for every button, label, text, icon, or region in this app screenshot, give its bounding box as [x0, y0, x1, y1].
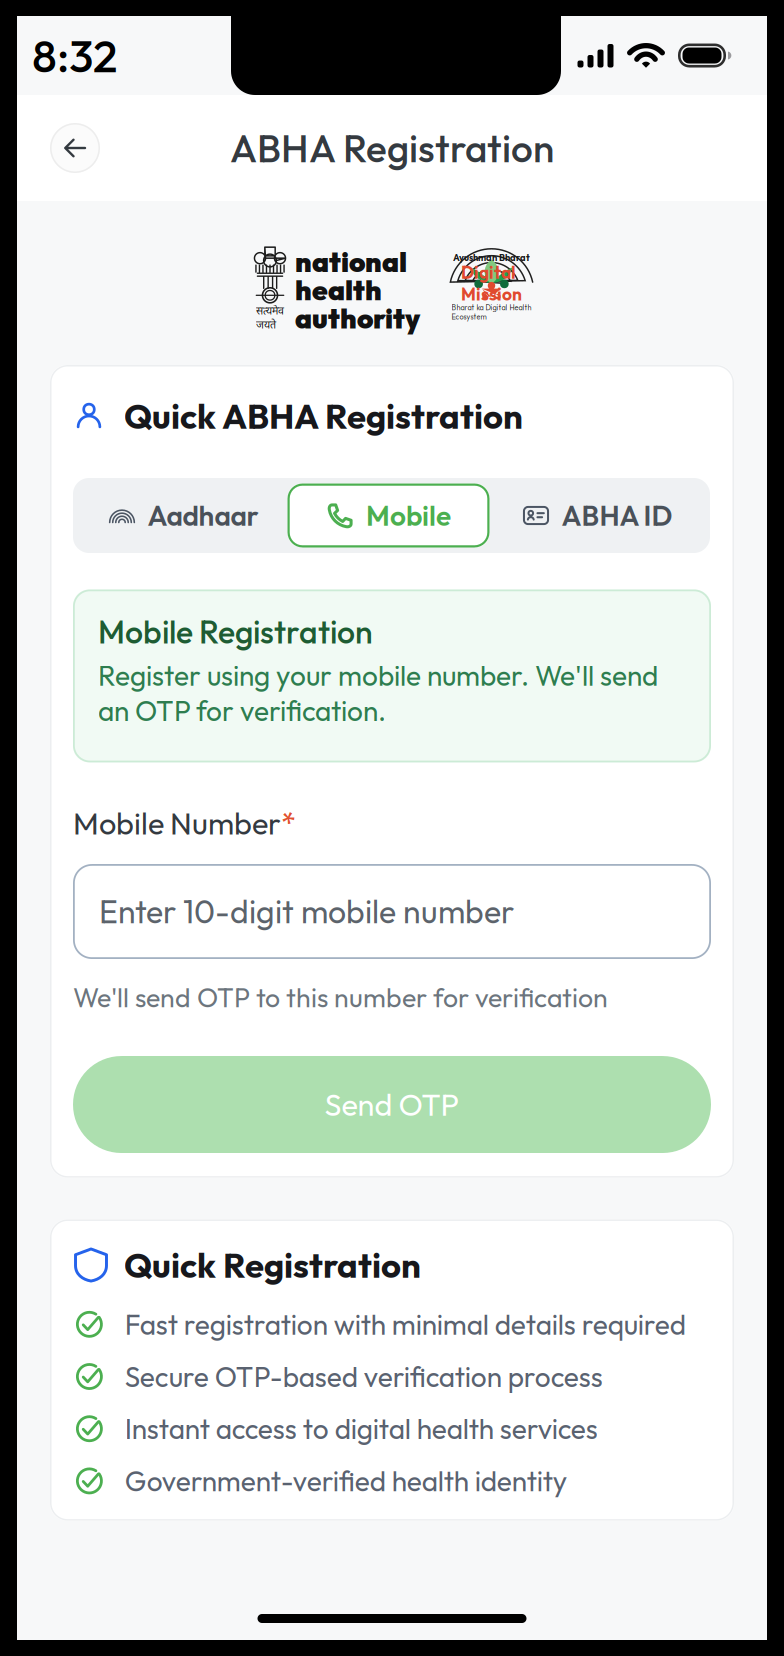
staticText: Instant access to digital health service… — [125, 1411, 598, 1446]
staticText: Register using your mobile number. We'll… — [98, 658, 658, 728]
staticText: * — [281, 804, 296, 842]
staticText: Mobile Number — [73, 804, 281, 842]
staticText: national — [295, 244, 407, 279]
staticText: Ayushman Bharat — [453, 252, 530, 263]
staticText: Fast registration with minimal details r… — [125, 1307, 686, 1342]
staticText: authority — [295, 301, 420, 336]
staticText: Quick ABHA Registration — [124, 394, 523, 438]
button[interactable]: Aadhaar — [78, 483, 287, 547]
staticText: Digital Mission — [461, 261, 522, 305]
staticText: 8:32 — [32, 27, 118, 84]
button[interactable]: Mobile — [287, 483, 489, 547]
button[interactable]: Back — [43, 116, 107, 180]
staticText: Mobile Registration — [98, 611, 373, 652]
staticText: Aadhaar — [147, 498, 258, 533]
staticText: Mobile — [366, 498, 451, 533]
staticText: Government-verified health identity — [125, 1463, 567, 1499]
staticText: ABHA Registration — [230, 124, 554, 172]
staticText: We'll send OTP to this number for verifi… — [73, 981, 608, 1014]
staticText: health — [295, 272, 382, 308]
staticText: Secure OTP-based verification process — [125, 1359, 603, 1394]
staticText: सत्यमेव जयते — [256, 305, 284, 333]
button[interactable]: ABHA ID — [489, 483, 704, 547]
staticText: Enter 10-digit mobile number — [99, 891, 514, 932]
staticText: Send OTP — [324, 1085, 459, 1124]
staticText: ABHA ID — [561, 498, 672, 533]
staticText: Bharat ka Digital Health Ecosystem — [451, 303, 531, 321]
button[interactable]: Send OTP — [73, 1056, 711, 1153]
staticText: Quick Registration — [124, 1243, 421, 1287]
